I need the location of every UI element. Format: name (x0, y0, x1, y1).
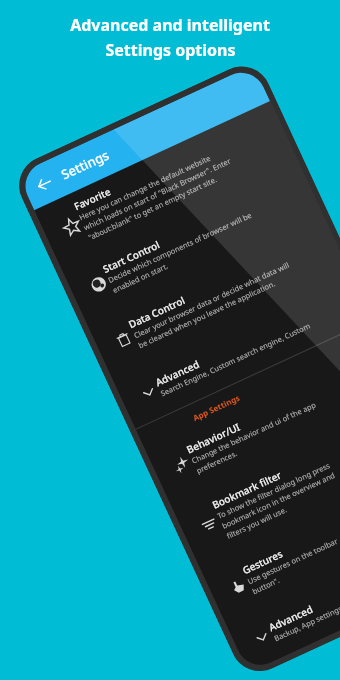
staticText: Here you can change the default website … (77, 146, 237, 242)
staticText: Change the behavior and ui of the app pr… (190, 399, 322, 475)
button[interactable]: Gestures (200, 459, 340, 624)
staticText: Search Engine, Custom search engine, Cus… (159, 320, 312, 398)
staticText: Advanced (266, 602, 315, 634)
staticText: Bookmark filter (210, 468, 284, 512)
staticText: Data Control (126, 293, 187, 331)
staticText: Decide which components of browser will … (106, 209, 259, 295)
staticText: Backup, App settings (272, 603, 340, 643)
button[interactable]: Advanced (226, 515, 340, 673)
staticText: Behavior/UI (184, 419, 243, 456)
staticText: Clear your browser data or decide what d… (132, 259, 296, 350)
staticText: Gestures (240, 546, 285, 577)
staticText: Settings (58, 146, 112, 183)
button[interactable]: Data Control (86, 213, 340, 378)
button[interactable]: Favorite (34, 101, 296, 267)
button[interactable]: Behavior/UI (144, 339, 340, 503)
staticText: Settings options (105, 39, 236, 61)
staticText: Start Control (100, 237, 163, 276)
staticText: Use gestures on the toolbar button". (246, 535, 340, 596)
staticText: App Settings (191, 392, 242, 423)
button[interactable]: Back (17, 65, 270, 210)
button[interactable]: Start Control (61, 158, 322, 323)
staticText: To show the filter dialog long press boo… (216, 460, 340, 541)
staticText: Favorite (71, 184, 113, 213)
button[interactable]: Bookmark filter (170, 394, 340, 569)
button[interactable]: Back (17, 157, 70, 210)
staticText: Advanced and intelligent (70, 14, 270, 36)
button[interactable]: Advanced (112, 269, 340, 429)
staticText: Advanced (153, 357, 201, 389)
